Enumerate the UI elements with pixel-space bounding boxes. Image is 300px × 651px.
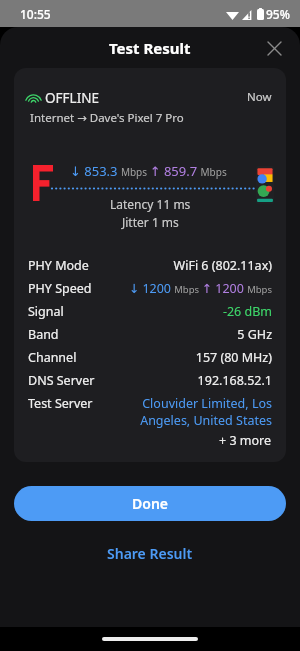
staticText: Now bbox=[247, 89, 272, 105]
staticText: PHY Speed bbox=[28, 280, 92, 297]
staticText: Internet → Dave's Pixel 7 Pro bbox=[30, 110, 184, 126]
staticText: ↓ 1200 Mbps ↑ 1200 Mbps bbox=[100, 280, 272, 297]
staticText: Band bbox=[28, 326, 59, 343]
staticText: Test Server bbox=[28, 395, 93, 412]
staticText: 5 GHz bbox=[67, 326, 272, 343]
staticText: 192.168.52.1 bbox=[103, 372, 272, 389]
button[interactable]: Share Result bbox=[0, 538, 300, 568]
staticText: Latency 11 ms bbox=[110, 196, 191, 212]
staticText: Channel bbox=[28, 349, 77, 366]
button[interactable]: Done bbox=[14, 486, 286, 521]
staticText: Signal bbox=[28, 303, 64, 320]
staticText: WiFi 6 (802.11ax) bbox=[97, 257, 272, 274]
staticText: PHY Mode bbox=[28, 257, 89, 274]
staticText: + 3 more bbox=[219, 432, 272, 449]
staticText: DNS Server bbox=[28, 372, 95, 389]
staticText: 10:55 bbox=[20, 6, 51, 22]
staticText: Jitter 1 ms bbox=[122, 214, 179, 230]
staticText: 95% bbox=[266, 6, 290, 22]
staticText: Share Result bbox=[107, 544, 193, 563]
staticText: 157 (80 MHz) bbox=[85, 349, 272, 366]
staticText: -26 dBm bbox=[72, 303, 272, 320]
staticText: Clouvider Limited, Los Angeles, United S… bbox=[101, 395, 272, 429]
staticText: ↓ 853.3 Mbps ↑ 859.7 Mbps bbox=[70, 162, 227, 180]
staticText: Test Result bbox=[109, 38, 191, 58]
button[interactable]: Close bbox=[259, 33, 289, 63]
staticText: OFFLINE bbox=[45, 89, 99, 107]
staticText: Done bbox=[132, 494, 169, 513]
